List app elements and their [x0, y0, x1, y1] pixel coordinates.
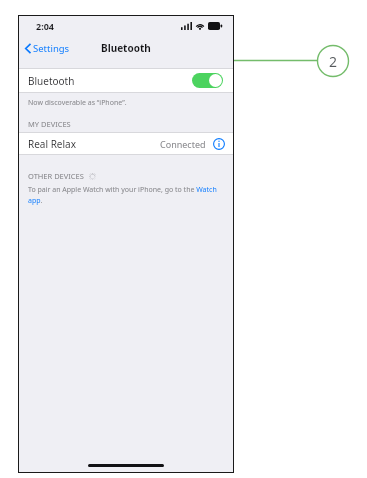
staticText: 2 — [329, 52, 338, 71]
button[interactable]: More info — [213, 138, 225, 150]
staticText: Bluetooth — [101, 41, 151, 55]
staticText: To pair an Apple Watch with your iPhone,… — [28, 185, 220, 205]
button[interactable]: Real Relax — [18, 133, 234, 154]
staticText: OTHER DEVICES — [28, 171, 84, 181]
staticText: 2:04 — [36, 20, 54, 32]
button[interactable]: Bluetooth on — [192, 73, 223, 88]
button[interactable]: Bluetooth — [18, 69, 234, 92]
staticText: Now discoverable as “iPhone”. — [28, 98, 127, 108]
staticText: Connected — [160, 138, 206, 150]
staticText: Bluetooth — [28, 74, 75, 88]
button[interactable]: Settings — [23, 40, 72, 57]
staticText: Real Relax — [28, 137, 76, 151]
staticText: MY DEVICES — [28, 119, 71, 129]
staticText: Settings — [33, 42, 70, 55]
